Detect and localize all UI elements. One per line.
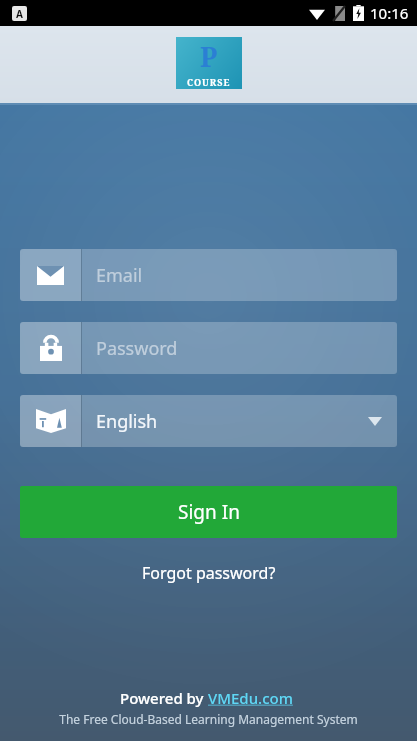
staticText: A [16,7,23,21]
staticText: P [200,38,218,75]
button[interactable]: English [20,395,397,447]
staticText: Password [96,336,178,361]
staticText: Sign In [178,499,240,525]
button[interactable]: Email [20,249,397,301]
staticText: COURSE [187,76,231,88]
staticText: VMEdu.com [208,688,297,708]
button[interactable]: VMEdu.com [208,688,297,708]
button[interactable]: Forgot password? [126,556,292,590]
staticText: English [96,409,158,434]
staticText: Forgot password? [142,562,276,584]
staticText: Email [96,263,143,288]
other: Select language [353,395,397,447]
button[interactable]: Sign In [20,486,397,538]
staticText: Powered by [120,688,208,708]
staticText: The Free Cloud-Based Learning Management… [59,711,358,727]
staticText: 10:16 [370,3,409,23]
button[interactable]: Password [20,322,397,374]
